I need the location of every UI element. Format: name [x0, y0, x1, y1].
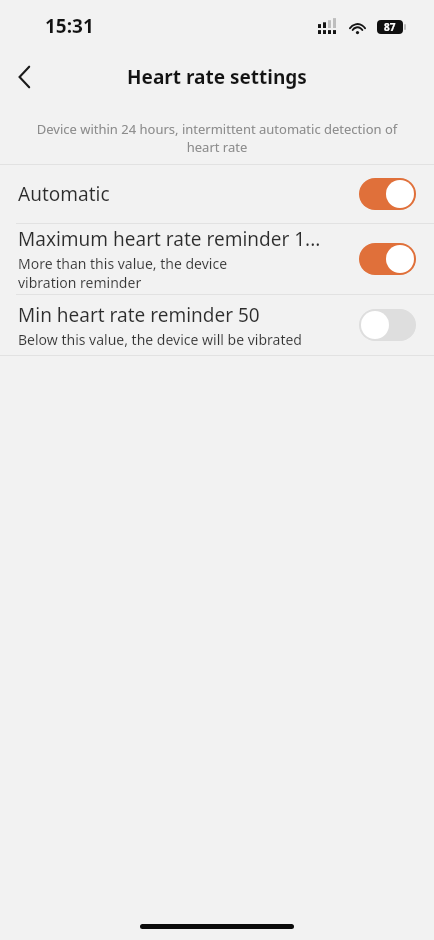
button[interactable]: Min heart rate reminder 50 — [0, 295, 434, 355]
staticText: Maximum heart rate reminder 1... — [18, 226, 321, 252]
staticText: Automatic — [18, 181, 110, 207]
staticText: Below this value, the device will be vib… — [18, 330, 302, 349]
staticText: Device within 24 hours, intermittent aut… — [22, 120, 412, 156]
button[interactable]: On — [359, 178, 416, 210]
staticText: 87 — [384, 20, 396, 34]
button[interactable]: Maximum heart rate reminder 1... — [0, 224, 434, 294]
button[interactable]: Automatic — [0, 165, 434, 223]
staticText: Heart rate settings — [127, 64, 307, 90]
staticText: More than this value, the device vibrati… — [18, 254, 228, 292]
button[interactable]: On — [359, 243, 416, 275]
staticText: Min heart rate reminder 50 — [18, 302, 260, 328]
button[interactable]: Back — [0, 53, 48, 101]
staticText: 15:31 — [45, 13, 94, 39]
button[interactable]: Off — [359, 309, 416, 341]
